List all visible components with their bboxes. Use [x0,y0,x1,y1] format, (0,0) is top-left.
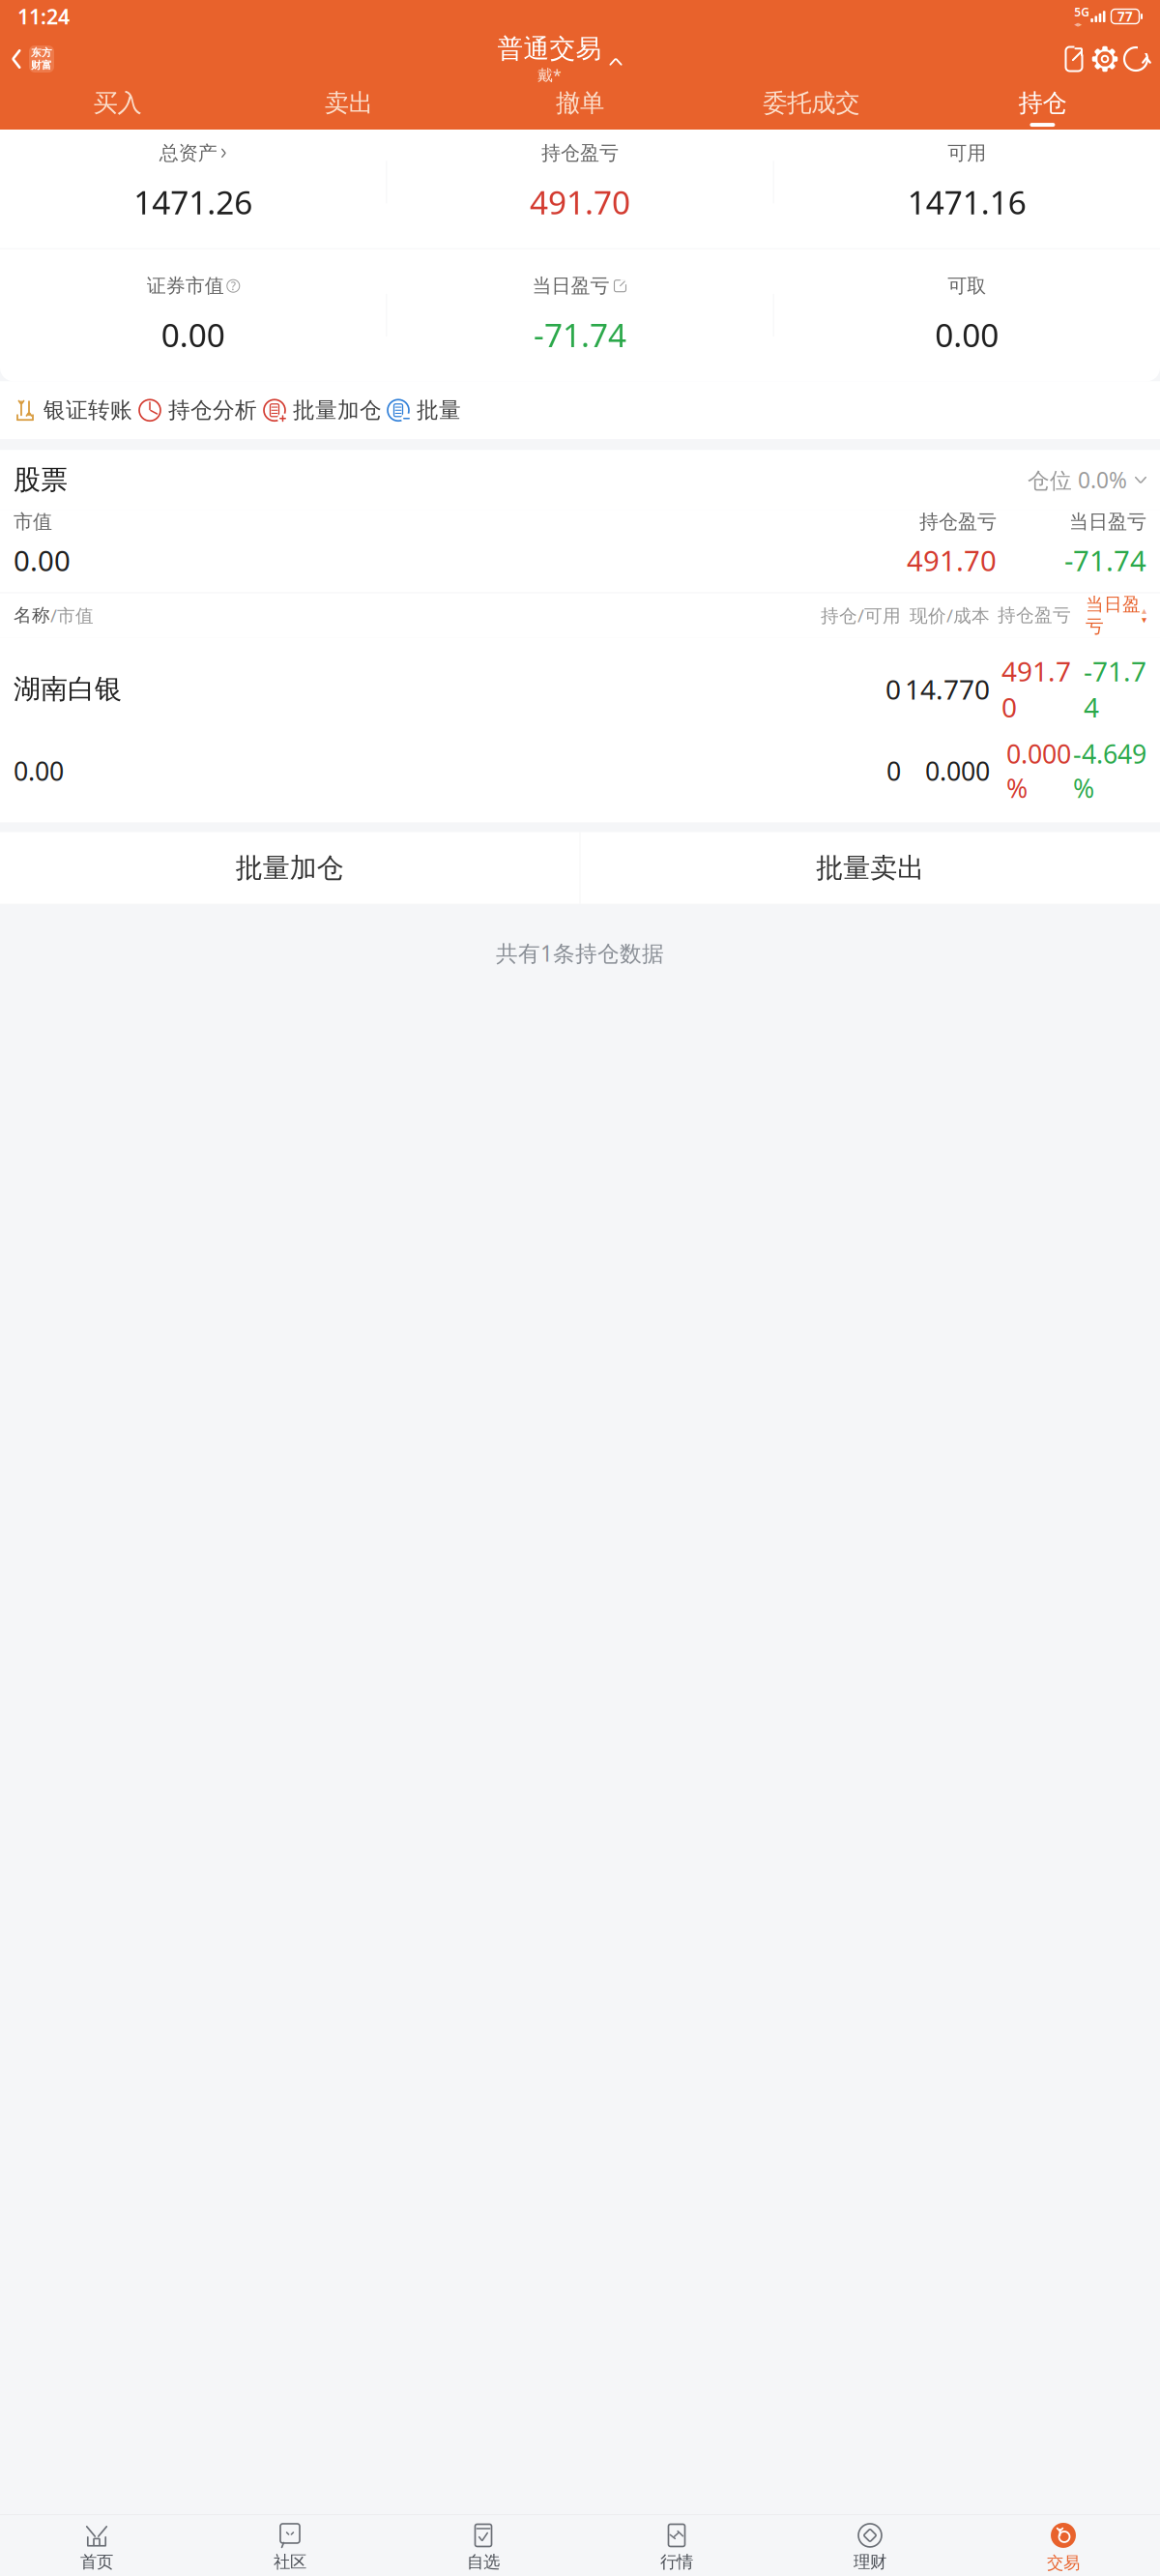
staticText: 1471.26 [134,180,253,223]
staticText: 股票 [14,463,68,497]
staticText: 证券市值 [147,274,224,298]
button[interactable]: 首页 [0,2522,193,2573]
button[interactable]: 批量加仓 [0,832,580,904]
button[interactable]: 总资产 [0,141,386,223]
staticText: -71.74 [534,313,626,356]
button[interactable]: 仓位 0.0% [1028,465,1146,494]
staticText: 名称 [14,604,50,626]
staticText: 持仓/可用 [821,603,901,627]
button[interactable]: 持仓 [927,85,1158,130]
staticText: 5G [1074,4,1090,20]
staticText: 市值 [14,510,52,534]
button[interactable]: 撤单 [464,85,696,130]
staticText: 77 [1117,8,1133,25]
button[interactable]: 交易 [967,2522,1160,2573]
staticText: 戴* [537,65,562,85]
staticText: 持仓分析 [168,397,257,424]
staticText: 0 [886,754,901,788]
button[interactable]: 行情 [580,2522,773,2573]
button[interactable]: 批量加仓 [261,397,385,424]
button[interactable]: 批量 [385,397,472,424]
staticText: 当日盈亏 [532,274,609,298]
button[interactable]: 普通交易 [497,33,622,85]
staticText: 批量 [417,397,461,424]
button[interactable]: 银证转账 [0,397,137,424]
staticText: 可用 [948,141,986,165]
staticText: 总资产 [159,141,217,165]
staticText: 撤单 [556,88,604,118]
staticText: ▲ [1142,607,1146,614]
staticText: 卖出 [325,88,373,118]
staticText: 买入 [93,88,142,118]
button[interactable]: 自选 [387,2522,580,2573]
button[interactable]: 持仓分析 [137,397,261,424]
staticText: 0.000% [1006,737,1071,805]
staticText: -4.649% [1073,737,1146,805]
button[interactable]: 卖出 [233,85,464,130]
staticText: 社区 [274,2552,306,2572]
staticText: 0.00 [161,313,225,356]
button[interactable]: 返回 [0,33,60,85]
button[interactable]: 设置 [1090,44,1119,73]
staticText: 首页 [80,2552,113,2572]
staticText: 财富 [31,59,52,72]
staticText: 自选 [467,2552,500,2572]
staticText: ? [231,278,236,294]
staticText: ▼ [1142,616,1146,624]
staticText: 当日盈亏 [1086,593,1141,638]
staticText: 持仓盈亏 [998,604,1071,626]
staticText: 行情 [660,2552,693,2572]
staticText: 1471.16 [907,180,1026,223]
staticText: 0 [885,671,901,707]
staticText: -71.74 [1084,653,1146,725]
staticText: 理财 [854,2552,886,2572]
staticText: 0.000 [925,754,990,788]
staticText: 可取 [948,274,986,298]
button[interactable]: 委托成交 [696,85,927,130]
staticText: 批量加仓 [236,851,344,885]
staticText: 批量卖出 [816,851,924,885]
staticText: 普通交易 [497,33,602,65]
staticText: 银证转账 [43,397,132,424]
button[interactable]: 分享 [1059,44,1088,73]
staticText: 当日盈亏 [1069,510,1146,534]
staticText: 现价/成本 [910,603,990,627]
staticText: 0.00 [14,754,64,788]
staticText: 491.70 [1001,653,1071,725]
staticText: 14.770 [905,671,990,707]
staticText: 持仓盈亏 [541,141,619,165]
staticText: 仓位 0.0% [1028,465,1127,494]
staticText: -71.74 [1064,541,1146,579]
staticText: 持仓盈亏 [919,510,997,534]
staticText: ◂▸ [1074,20,1082,29]
button[interactable]: 当日盈亏 [1071,593,1146,638]
staticText: 0.00 [14,541,71,579]
staticText: 11:24 [17,3,70,30]
staticText: 交易 [1047,2553,1080,2573]
staticText: 批量加仓 [293,397,382,424]
staticText: 委托成交 [763,88,860,118]
button[interactable]: 批量卖出 [580,832,1160,904]
button[interactable]: 湖南白银 [0,638,1160,823]
button[interactable]: 刷新 [1121,44,1150,73]
button[interactable]: 买入 [2,85,233,130]
staticText: 491.70 [530,180,630,223]
button[interactable]: 社区 [193,2522,387,2573]
staticText: 东方 [31,46,52,59]
staticText: 持仓 [1018,88,1067,118]
button[interactable]: 理财 [773,2522,967,2573]
button[interactable]: 当日盈亏 [387,274,773,356]
staticText: 湖南白银 [14,672,122,706]
staticText: 共有1条持仓数据 [496,939,664,968]
staticText: 491.70 [907,541,997,579]
staticText: /市值 [50,603,94,627]
staticText: 0.00 [935,313,999,356]
